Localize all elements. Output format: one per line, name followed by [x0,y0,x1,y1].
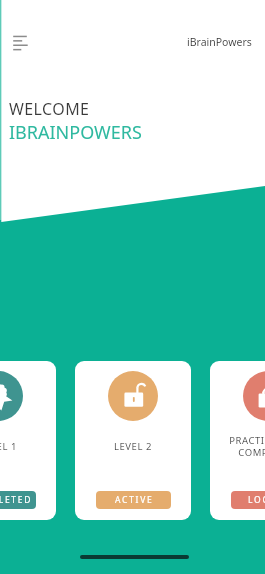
staticText: COMPLETED [0,494,33,506]
button[interactable]: PRACTICE EXAM COMPLETED [210,361,265,520]
staticText: WELCOME [9,98,90,120]
button[interactable]: ACTIVE [96,491,171,509]
staticText: iBrainPowers [187,35,252,49]
staticText: IBRAINPOWERS [9,120,142,145]
staticText: LOCKED [248,494,265,506]
button[interactable]: COMPLETED [0,491,36,509]
button[interactable]: LEVEL 1 [0,361,56,520]
button[interactable]: LOCKED [231,491,265,509]
staticText: LEVEL 1 [0,440,17,453]
staticText: ACTIVE [115,494,154,506]
staticText: LEVEL 2 [114,440,152,453]
button[interactable]: Menu [4,26,38,60]
staticText: PRACTICE EXAM COMPLETED [229,434,265,458]
button[interactable]: LEVEL 2 [75,361,191,520]
